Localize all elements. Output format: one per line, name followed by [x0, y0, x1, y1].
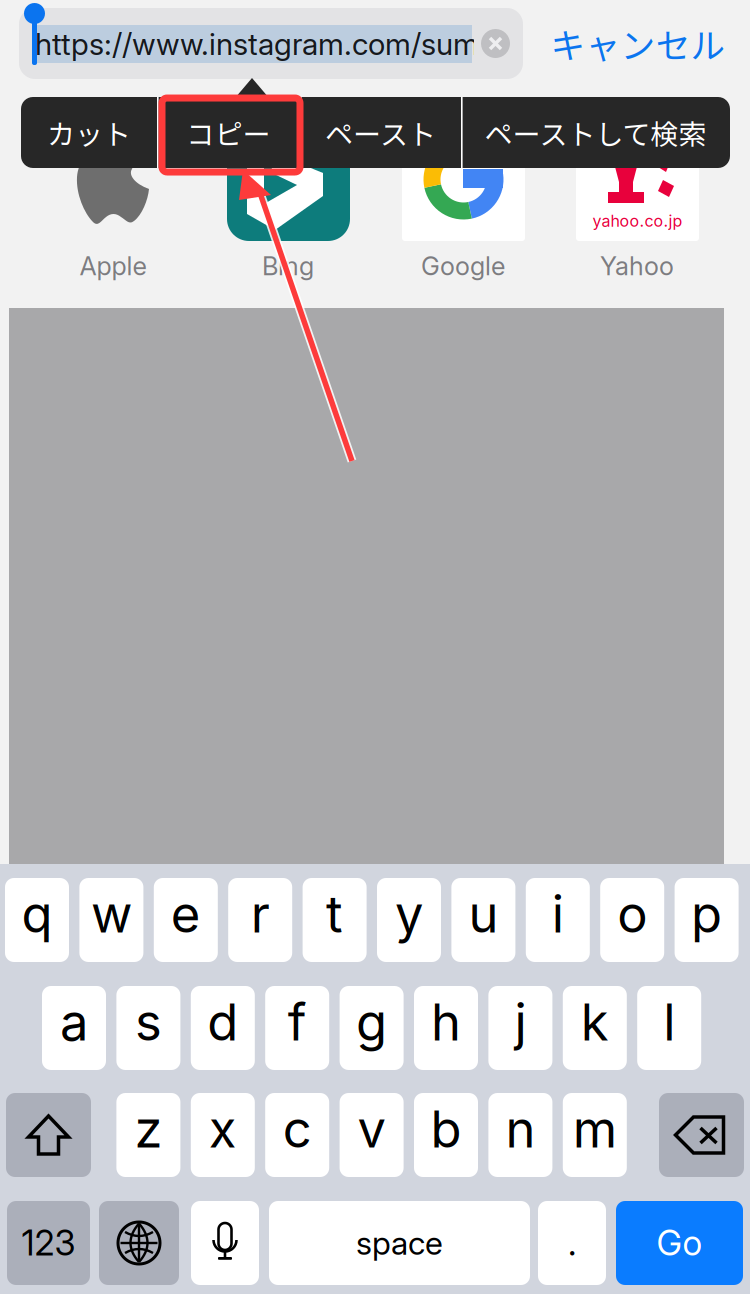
staticText: yahoo.co.jp — [592, 211, 682, 231]
button[interactable]: Go — [616, 1201, 743, 1285]
button[interactable]: u — [451, 878, 515, 962]
button[interactable]: j — [488, 986, 552, 1070]
staticText: 123 — [21, 1222, 75, 1264]
button[interactable]: ペースト — [21, 97, 182, 168]
button[interactable]: g — [340, 986, 404, 1070]
staticText: キャンセル — [550, 18, 725, 69]
button[interactable]: a — [42, 986, 106, 1070]
button[interactable]: z — [116, 1093, 180, 1177]
button[interactable]: カット — [21, 97, 157, 168]
button[interactable]: i — [526, 878, 590, 962]
staticText: c — [283, 1098, 312, 1160]
staticText: https://www.instagram.com/sum — [35, 26, 479, 62]
button[interactable]: Apple — [0, 0, 90, 100]
button[interactable]: h — [414, 986, 478, 1070]
staticText: . — [568, 1222, 576, 1264]
button[interactable]: Yahoo — [0, 0, 123, 123]
button[interactable]: キャンセル — [540, 8, 736, 79]
staticText: p — [691, 883, 722, 945]
button[interactable]: f — [265, 986, 329, 1070]
button[interactable]: d — [191, 986, 255, 1070]
button[interactable]: m — [563, 1093, 627, 1177]
button[interactable]: Dictation — [191, 1201, 259, 1285]
button[interactable]: Bing — [0, 0, 123, 123]
staticText: k — [581, 991, 609, 1053]
staticText: Google — [421, 251, 505, 281]
staticText: z — [134, 1098, 162, 1160]
button[interactable]: k — [563, 986, 627, 1070]
button[interactable]: Shift — [6, 1093, 91, 1177]
button[interactable]: s — [116, 986, 180, 1070]
staticText: カット — [47, 112, 131, 153]
staticText: a — [60, 991, 88, 1053]
staticText: n — [505, 1098, 535, 1160]
staticText: i — [552, 883, 564, 945]
button[interactable]: x — [191, 1093, 255, 1177]
staticText: y — [395, 883, 423, 945]
button[interactable]: . — [538, 1201, 606, 1285]
staticText: r — [251, 883, 270, 945]
staticText: s — [135, 991, 162, 1053]
button[interactable]: v — [340, 1093, 404, 1177]
button[interactable]: r — [228, 878, 292, 962]
button[interactable]: l — [637, 986, 701, 1070]
button[interactable]: q — [5, 878, 69, 962]
button[interactable]: Google — [0, 0, 123, 123]
staticText: h — [431, 991, 461, 1053]
staticText: g — [356, 991, 387, 1053]
button[interactable]: space — [269, 1201, 530, 1285]
staticText: e — [171, 883, 201, 945]
button[interactable]: c — [265, 1093, 329, 1177]
staticText: m — [573, 1098, 617, 1160]
staticText: u — [468, 883, 498, 945]
button[interactable]: b — [414, 1093, 478, 1177]
button[interactable]: Delete — [659, 1093, 744, 1177]
staticText: t — [326, 883, 343, 945]
button[interactable]: p — [675, 878, 739, 962]
staticText: Yahoo — [600, 251, 674, 281]
staticText: x — [209, 1098, 237, 1160]
staticText: j — [514, 991, 526, 1053]
staticText: d — [207, 991, 238, 1053]
button[interactable]: 123 — [7, 1201, 90, 1285]
button[interactable]: ペーストして検索 — [21, 97, 290, 168]
button[interactable]: y — [377, 878, 441, 962]
staticText: v — [358, 1098, 386, 1160]
button[interactable]: w — [79, 878, 143, 962]
staticText: l — [663, 991, 675, 1053]
button[interactable]: Next keyboard — [99, 1201, 179, 1285]
staticText: Apple — [79, 251, 146, 281]
button[interactable]: コピー — [21, 97, 164, 168]
staticText: o — [617, 883, 647, 945]
staticText: コピー — [186, 112, 270, 153]
staticText: space — [356, 1224, 443, 1262]
button[interactable]: t — [303, 878, 367, 962]
button[interactable]: o — [600, 878, 664, 962]
staticText: Go — [656, 1222, 702, 1264]
staticText: f — [288, 991, 307, 1053]
staticText: q — [21, 883, 52, 945]
button[interactable]: n — [488, 1093, 552, 1177]
staticText: ペースト — [325, 112, 436, 153]
staticText: w — [91, 883, 132, 945]
staticText: Bing — [262, 251, 314, 281]
staticText: ペーストして検索 — [484, 112, 706, 153]
button[interactable]: Clear text — [481, 29, 511, 59]
staticText: b — [430, 1098, 461, 1160]
button[interactable]: e — [154, 878, 218, 962]
